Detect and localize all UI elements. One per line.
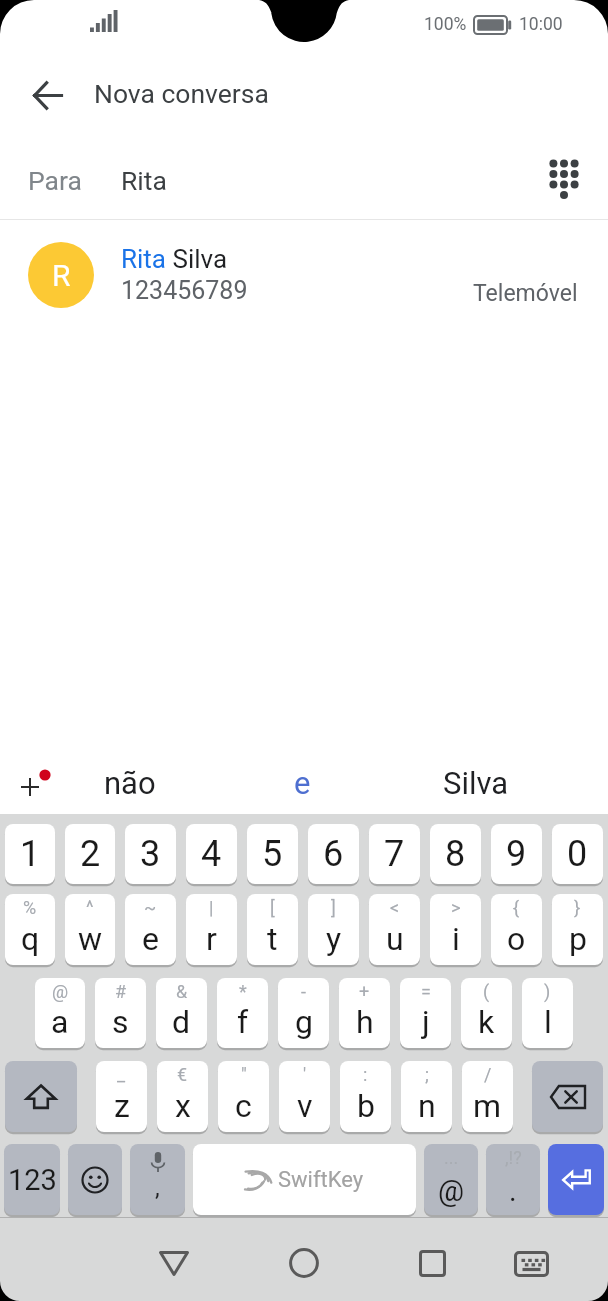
button[interactable]: Backspace [532, 1061, 603, 1132]
other: Emoji [68, 1144, 122, 1215]
button[interactable]: / [462, 1061, 513, 1132]
button[interactable]: Space [193, 1144, 416, 1215]
button[interactable]: Home [268, 1227, 340, 1299]
button[interactable]: > [430, 894, 481, 965]
staticText: * [239, 981, 247, 1002]
staticText: h [356, 1003, 374, 1041]
staticText: l [544, 1003, 552, 1041]
button[interactable]: < [369, 894, 420, 965]
staticText: não [104, 765, 156, 801]
staticText: @ [438, 1174, 465, 1208]
staticText: f [237, 1003, 249, 1041]
button[interactable]: ^ [65, 894, 115, 965]
other: Space [193, 1144, 416, 1215]
staticText: - [301, 981, 306, 1002]
staticText: r [206, 920, 217, 958]
staticText: ~ [144, 897, 157, 918]
button[interactable]: e [216, 752, 389, 814]
button[interactable]: 7 [369, 824, 420, 884]
button[interactable]: _ [96, 1061, 147, 1132]
button[interactable]: & [156, 978, 207, 1048]
button[interactable]: 9 [491, 824, 542, 884]
button[interactable]: { [491, 894, 542, 965]
staticText: # [115, 981, 127, 1002]
button[interactable]: ; [401, 1061, 452, 1132]
button[interactable]: - [278, 978, 329, 1048]
button[interactable]: Recents [396, 1227, 468, 1299]
button[interactable]: Hide keyboard [495, 1228, 567, 1300]
button[interactable]: Back [9, 57, 85, 133]
button[interactable]: ' [279, 1061, 330, 1132]
staticText: 4 [201, 833, 222, 875]
staticText: < [390, 897, 400, 918]
button[interactable]: | [186, 894, 237, 965]
other: Backspace [532, 1061, 603, 1132]
button[interactable]: + [339, 978, 390, 1048]
staticText: e [294, 765, 311, 801]
button[interactable]: ,!? [486, 1144, 540, 1215]
button[interactable]: 2 [65, 824, 115, 884]
button[interactable]: More options [4, 757, 56, 809]
button[interactable]: Emoji [68, 1144, 122, 1215]
button[interactable]: ~ [125, 894, 176, 965]
staticText: n [418, 1087, 436, 1125]
button[interactable]: = [400, 978, 451, 1048]
other: Shift [5, 1061, 77, 1132]
button[interactable]: Enter [548, 1144, 604, 1215]
button[interactable]: 123 [4, 1144, 60, 1215]
button[interactable]: Back [138, 1227, 210, 1299]
button[interactable]: ... [424, 1144, 478, 1215]
staticText: Nova conversa [94, 78, 269, 109]
staticText: q [21, 920, 40, 958]
staticText: . [509, 1174, 517, 1208]
staticText: | [209, 897, 214, 918]
button[interactable]: : [340, 1061, 391, 1132]
button[interactable]: ) [522, 978, 573, 1048]
staticText: j [422, 1003, 430, 1041]
button[interactable]: 0 [552, 824, 603, 884]
button[interactable]: ( [461, 978, 512, 1048]
staticText: Telemóvel [473, 280, 578, 307]
staticText: , [155, 1174, 160, 1202]
button[interactable]: # [95, 978, 146, 1048]
staticText: > [451, 897, 461, 918]
button[interactable]: @ [35, 978, 85, 1048]
button[interactable]: 5 [247, 824, 298, 884]
staticText: = [421, 981, 431, 1002]
staticText: ^ [86, 897, 94, 918]
staticText: 9 [506, 833, 527, 875]
button[interactable]: " [218, 1061, 269, 1132]
staticText: ) [544, 981, 551, 1002]
button[interactable]: 8 [430, 824, 481, 884]
button[interactable]: R [0, 220, 608, 332]
button[interactable]: } [552, 894, 603, 965]
button[interactable]: % [5, 894, 55, 965]
staticText: ' [303, 1064, 307, 1085]
button[interactable]: * [217, 978, 268, 1048]
button[interactable]: Silva [389, 752, 562, 814]
button[interactable]: 3 [125, 824, 176, 884]
staticText: v [297, 1087, 313, 1125]
button[interactable]: Dialpad [534, 149, 596, 211]
button[interactable]: Shift [5, 1061, 77, 1132]
button[interactable]: 1 [5, 824, 55, 884]
staticText: w [78, 920, 103, 958]
staticText: c [235, 1087, 252, 1125]
button[interactable]: não [44, 752, 216, 814]
staticText: 0 [567, 833, 588, 875]
button[interactable]: 6 [308, 824, 359, 884]
staticText: _ [117, 1064, 126, 1085]
button[interactable]: ] [308, 894, 359, 965]
button[interactable]: [ [247, 894, 298, 965]
button[interactable]: 4 [186, 824, 237, 884]
button[interactable]: , [130, 1144, 185, 1215]
staticText: 123456789 [121, 276, 248, 305]
staticText: Silva [443, 765, 509, 801]
staticText: SwiftKey [278, 1167, 364, 1193]
button[interactable]: € [157, 1061, 208, 1132]
staticText: R [52, 258, 71, 293]
staticText: } [574, 897, 581, 918]
staticText: 2 [80, 833, 101, 875]
staticText: / [484, 1064, 492, 1085]
